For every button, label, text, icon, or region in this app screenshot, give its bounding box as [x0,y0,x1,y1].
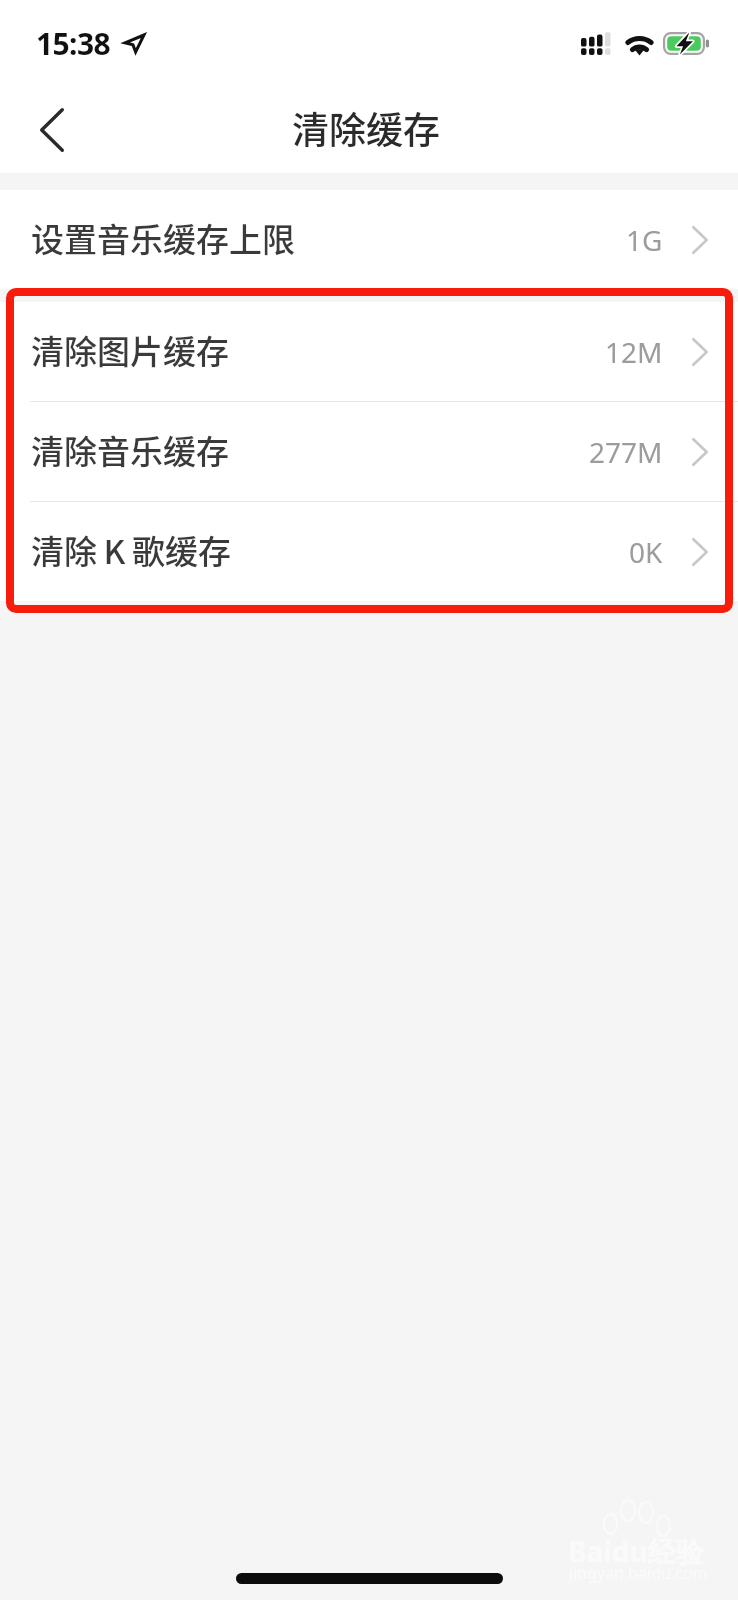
staticText: 12M [605,333,663,371]
button[interactable]: 清除音乐缓存 [0,402,738,501]
staticText: 清除 K 歌缓存 [31,526,232,574]
staticText: 15:38 [36,23,111,64]
staticText: 1G [626,221,663,259]
button[interactable]: 设置音乐缓存上限 [0,190,738,289]
staticText: 设置音乐缓存上限 [31,214,295,262]
staticText: 0K [629,533,663,571]
button[interactable]: Back [21,86,83,173]
button[interactable]: 清除 K 歌缓存 [0,502,738,601]
staticText: 清除缓存 [292,101,440,155]
button[interactable]: 清除图片缓存 [0,302,738,401]
staticText: 清除音乐缓存 [31,426,229,474]
staticText: 277M [589,433,663,471]
staticText: 清除图片缓存 [31,326,229,374]
